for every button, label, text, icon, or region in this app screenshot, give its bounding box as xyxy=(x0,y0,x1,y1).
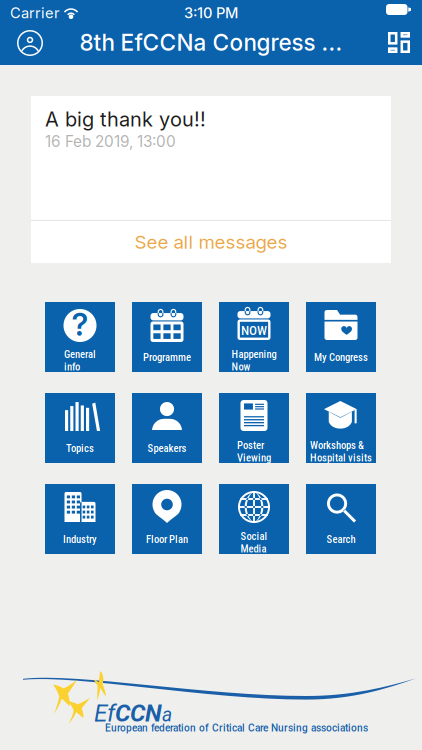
button[interactable]: Search xyxy=(306,484,376,554)
staticText: Search xyxy=(326,533,355,545)
button[interactable]: Workshops & Hospital visits xyxy=(306,393,376,463)
button[interactable]: NOW xyxy=(219,302,289,372)
staticText: Industry xyxy=(63,533,97,545)
staticText: Floor Plan xyxy=(146,533,188,545)
button[interactable]: See all messages xyxy=(31,221,391,263)
staticText: My Congress xyxy=(314,351,368,363)
button[interactable]: Topics xyxy=(45,393,115,463)
staticText: 16 Feb 2019, 13:00 xyxy=(45,132,176,151)
staticText: European federation of Critical Care Nur… xyxy=(105,722,368,734)
staticText: ? xyxy=(71,306,88,343)
staticText: Happening Now xyxy=(231,348,276,373)
staticText: Ef xyxy=(94,699,115,727)
staticText: Poster Viewing xyxy=(237,439,271,464)
staticText: See all messages xyxy=(134,231,287,253)
staticText: Topics xyxy=(66,442,94,454)
button[interactable]: Menu xyxy=(377,21,421,64)
button[interactable]: Poster Viewing xyxy=(219,393,289,463)
button[interactable]: Social Media xyxy=(219,484,289,554)
staticText: General info xyxy=(64,348,96,373)
staticText: Social Media xyxy=(240,530,267,555)
staticText: CCN xyxy=(115,699,162,727)
button[interactable]: Account xyxy=(8,21,52,65)
button[interactable]: Programme xyxy=(132,302,202,372)
button[interactable]: Floor Plan xyxy=(132,484,202,554)
staticText: Programme xyxy=(143,351,191,363)
staticText: NOW xyxy=(241,323,267,338)
staticText: 3:10 PM xyxy=(184,4,238,22)
button[interactable]: Industry xyxy=(45,484,115,554)
staticText: 8th EfCCNa Congress ... xyxy=(79,29,342,56)
staticText: A big thank you!! xyxy=(45,107,206,131)
staticText: Speakers xyxy=(147,442,186,454)
button[interactable]: Speakers xyxy=(132,393,202,463)
staticText: Workshops & Hospital visits xyxy=(310,439,372,464)
staticText: a xyxy=(162,704,172,726)
button[interactable]: My Congress xyxy=(306,302,376,372)
staticText: Carrier xyxy=(10,4,60,22)
button[interactable]: ? xyxy=(45,302,115,372)
